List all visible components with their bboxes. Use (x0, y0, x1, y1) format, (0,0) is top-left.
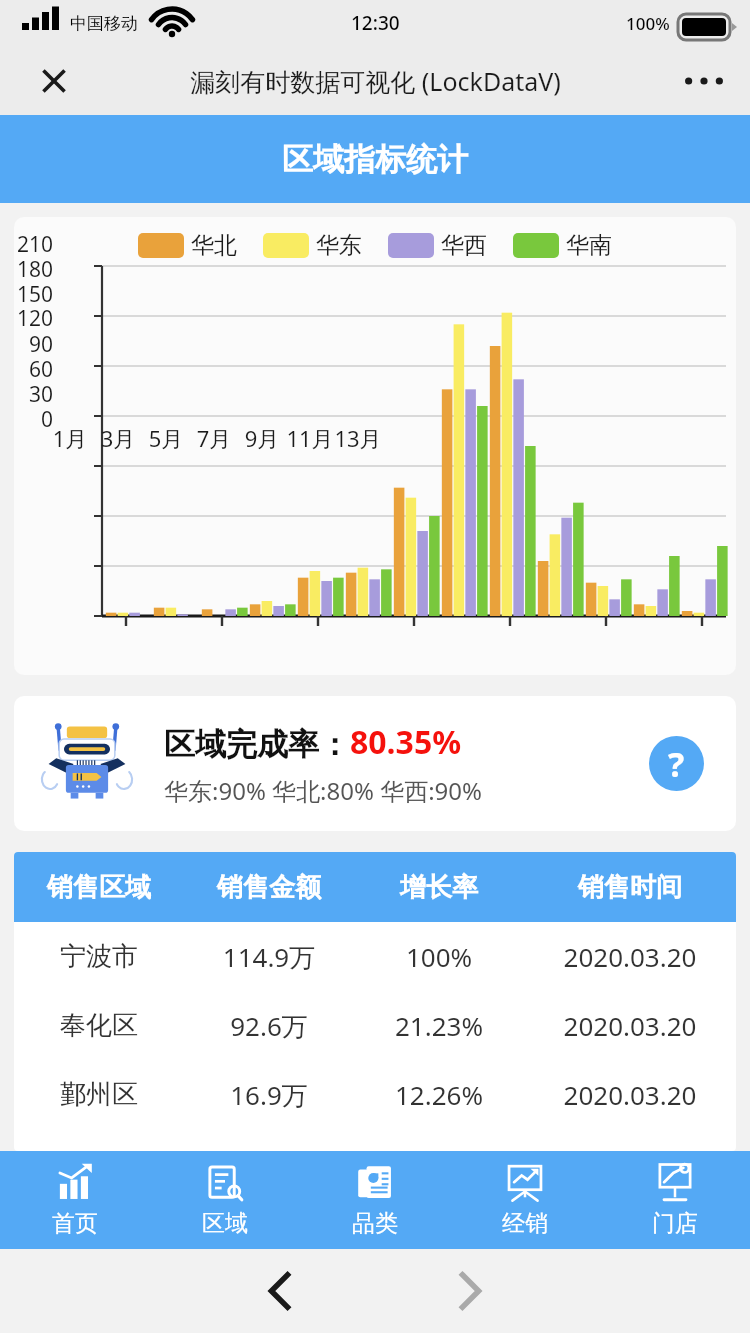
staticText: 区域 (202, 1209, 248, 1238)
staticText: 宁波市 (14, 940, 184, 973)
staticText: 3月 (88, 423, 148, 453)
staticText: 销售区域 (14, 871, 184, 904)
staticText: 2020.03.20 (524, 939, 736, 974)
staticText: 80.35% (350, 720, 462, 764)
staticText: 华东 (316, 231, 362, 260)
staticText: 华东:90% 华北:80% 华西:90% (164, 774, 482, 807)
button[interactable]: 品类 (300, 1151, 450, 1249)
staticText: 100% (354, 939, 524, 974)
staticText: 经销 (502, 1209, 548, 1238)
staticText: 品类 (352, 1209, 398, 1238)
staticText: 13月 (328, 423, 388, 453)
button[interactable]: 区域 (150, 1151, 300, 1249)
staticText: 114.9万 (184, 939, 354, 975)
button[interactable]: 宁波市 (14, 922, 736, 991)
staticText: 华西 (441, 231, 487, 260)
staticText: 90 (14, 330, 53, 359)
staticText: 92.6万 (184, 1008, 354, 1044)
staticText: 21.23% (354, 1008, 524, 1043)
staticText: 12.26% (354, 1077, 524, 1112)
button[interactable]: Back (253, 1264, 307, 1318)
button[interactable]: 经销 (450, 1151, 600, 1249)
staticText: 11月 (280, 423, 340, 453)
staticText: 华南 (566, 231, 612, 260)
staticText: 16.9万 (184, 1077, 354, 1113)
staticText: 华北 (191, 231, 237, 260)
staticText: 奉化区 (14, 1009, 184, 1042)
staticText: 5月 (136, 423, 196, 453)
staticText: 7月 (184, 423, 244, 453)
staticText: 180 (14, 255, 53, 284)
staticText: 0 (14, 405, 53, 434)
staticText: 销售时间 (524, 871, 736, 904)
button[interactable]: Close (30, 57, 78, 105)
button[interactable]: Forward (443, 1264, 497, 1318)
staticText: 210 (14, 230, 53, 259)
staticText: 2020.03.20 (524, 1077, 736, 1112)
button[interactable]: 门店 (600, 1151, 750, 1249)
staticText: 区域完成率： (164, 725, 350, 764)
staticText: 120 (14, 304, 53, 333)
button[interactable]: 首页 (0, 1151, 150, 1249)
staticText: 60 (14, 355, 53, 384)
staticText: 150 (14, 280, 53, 309)
staticText: 30 (14, 380, 53, 409)
staticText: 销售金额 (184, 871, 354, 904)
staticText: 门店 (652, 1209, 698, 1238)
staticText: ? (668, 741, 685, 787)
staticText: 漏刻有时数据可视化 (LockDataV) (190, 64, 561, 98)
button[interactable]: Help (649, 736, 704, 791)
staticText: 中国移动 (70, 13, 138, 34)
staticText: 12:30 (351, 10, 400, 36)
staticText: 100% (626, 12, 670, 35)
button[interactable]: More options (680, 57, 728, 105)
staticText: 增长率 (354, 871, 524, 904)
staticText: 区域指标统计 (282, 140, 468, 179)
staticText: 鄞州区 (14, 1078, 184, 1111)
button[interactable]: 奉化区 (14, 991, 736, 1060)
staticText: 9月 (232, 423, 292, 453)
staticText: 1月 (40, 423, 100, 453)
button[interactable]: 鄞州区 (14, 1060, 736, 1129)
staticText: 首页 (52, 1209, 98, 1238)
staticText: 2020.03.20 (524, 1008, 736, 1043)
